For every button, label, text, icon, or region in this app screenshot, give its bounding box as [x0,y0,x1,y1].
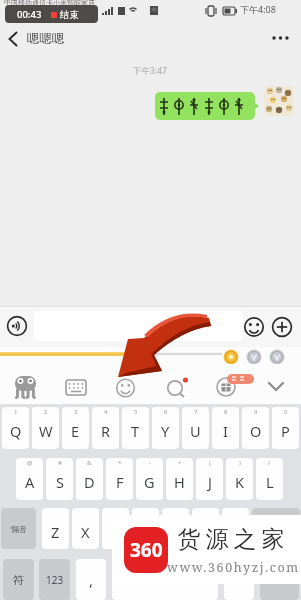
button[interactable] [155,92,255,120]
button[interactable]: 4 [92,407,119,449]
button[interactable]: * [106,458,133,500]
button[interactable]: ( [196,458,223,500]
button[interactable]: 9 [242,407,269,449]
staticText: 5 [134,408,138,416]
button[interactable]: M [222,508,249,549]
button[interactable] [110,372,142,404]
button[interactable]: V [132,508,159,549]
staticText: 货源之家 [175,525,287,554]
staticText: D [84,472,95,492]
staticText: Z [51,522,60,542]
button[interactable]: 123 [39,559,70,600]
button[interactable]: N [192,508,219,549]
staticText: Q [10,421,22,441]
button[interactable] [34,311,243,341]
button[interactable] [0,26,26,52]
button[interactable]: 8 [212,407,239,449]
staticText: 3 [74,408,78,416]
button[interactable]: & [76,458,103,500]
staticText: J [208,472,212,492]
button[interactable]: 00:43 [5,5,98,23]
button[interactable]: 5 [122,407,149,449]
staticText: 6 [164,408,168,416]
staticText: 中国移动通信卡小米智能家居 [4,0,95,7]
button[interactable] [266,26,296,50]
staticText: ) [239,459,241,467]
button[interactable]: # [46,458,73,500]
staticText: 9 [254,408,258,416]
button[interactable]: B [162,508,189,549]
staticText: F [116,472,124,492]
button[interactable]: 1 [2,407,29,449]
staticText: B [171,522,181,542]
staticText: R [101,421,111,441]
button[interactable]: / [256,458,283,500]
button[interactable] [264,86,294,116]
staticText: 下午4:08 [240,3,276,15]
staticText: M [229,522,243,542]
staticText: 0 [284,408,288,416]
staticText: X [81,522,90,542]
button[interactable]: ) [226,458,253,500]
staticText: / [268,459,271,467]
button[interactable]: 6 [152,407,179,449]
button[interactable]: Z [42,508,69,549]
staticText: 4 [104,408,108,416]
button[interactable]: '隔音 [1,508,36,549]
button[interactable] [262,374,292,400]
staticText: # [58,459,62,467]
button[interactable]: + [166,458,193,500]
staticText: ( [209,459,211,467]
staticText: Y [161,421,170,441]
staticText: N [200,522,212,542]
staticText: 下午3:47 [120,65,180,77]
staticText: 2 [44,408,48,416]
button[interactable]: X [72,508,99,549]
staticText: 中 [274,573,285,586]
staticText: K [235,472,244,492]
button[interactable] [60,372,92,402]
button[interactable]: 中 [260,559,299,600]
staticText: P [281,421,290,441]
staticText: * [118,459,122,467]
button[interactable]: 符 [3,559,34,600]
button[interactable] [242,315,266,339]
staticText: 7 [194,408,198,416]
staticText: W [39,421,53,441]
button[interactable]: - [136,458,163,500]
button[interactable]: 2 [32,407,59,449]
button[interactable] [210,370,250,404]
staticText: T [131,421,140,441]
button[interactable]: 。 [224,559,254,600]
button[interactable] [160,372,194,404]
staticText: 00:43 [17,8,42,21]
staticText: 嗯嗯嗯 [27,31,65,47]
staticText: 符 [13,573,24,587]
button[interactable]: 0 [272,407,299,449]
staticText: E [71,421,80,441]
staticText: 360 [130,537,163,563]
staticText: www.360hyzj.com [167,559,300,576]
button[interactable] [2,311,32,341]
staticText: 123 [46,573,64,587]
button[interactable] [7,368,43,402]
button[interactable]: C [102,508,129,549]
button[interactable] [252,508,300,549]
button[interactable]: 7 [182,407,209,449]
staticText: L [266,472,274,492]
staticText: S [56,472,64,492]
button[interactable]: 3 [62,407,89,449]
button[interactable]: @ [16,458,43,500]
staticText: U [190,421,201,441]
staticText: V [141,522,150,542]
button[interactable] [112,559,218,600]
staticText: 1 [14,408,18,416]
button[interactable] [270,315,294,339]
button[interactable]: , [76,559,106,600]
